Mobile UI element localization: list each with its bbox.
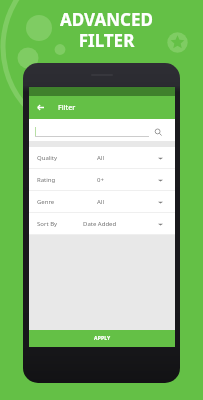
staticText: Sort By [37, 220, 58, 228]
staticText: APPLY [94, 335, 111, 342]
button[interactable]: Genre [29, 191, 175, 213]
staticText: ADVANCED FILTER [5, 8, 203, 52]
staticText: All [97, 198, 104, 206]
staticText: Genre [37, 198, 55, 206]
staticText: Filter [58, 103, 76, 113]
button[interactable]: Back [29, 96, 51, 119]
staticText: Quality [37, 154, 58, 162]
button[interactable]: Search [154, 128, 163, 137]
staticText: All [97, 154, 104, 162]
button[interactable]: Rating [29, 169, 175, 191]
button[interactable]: APPLY [29, 330, 175, 347]
button[interactable]: Sort By [29, 213, 175, 235]
staticText: Rating [37, 176, 56, 184]
button[interactable]: Quality [29, 147, 175, 169]
staticText: 0+ [97, 176, 104, 184]
staticText: Date Added [83, 220, 117, 228]
